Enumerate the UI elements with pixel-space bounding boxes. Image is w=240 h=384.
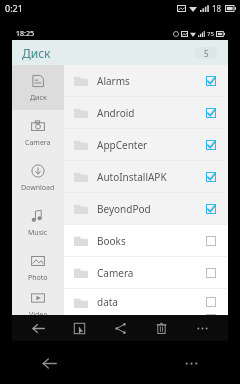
- staticText: Download: [21, 183, 55, 193]
- button[interactable]: BeyondPod: [64, 193, 228, 224]
- button[interactable]: Android: [64, 97, 228, 128]
- button[interactable]: Select Camera: [204, 266, 218, 280]
- staticText: 0:21: [5, 2, 23, 14]
- button[interactable]: Share: [105, 315, 135, 341]
- staticText: Music: [28, 228, 48, 238]
- button[interactable]: More options: [178, 350, 204, 376]
- button[interactable]: Back: [23, 315, 53, 341]
- staticText: 75: [207, 30, 214, 38]
- button[interactable]: More: [187, 315, 217, 341]
- button[interactable]: Back: [36, 350, 62, 376]
- staticText: Android: [97, 106, 204, 120]
- button[interactable]: Music: [12, 200, 64, 245]
- button[interactable]: Select AppCenter: [204, 138, 218, 152]
- staticText: Video: [29, 310, 48, 315]
- staticText: data: [97, 295, 204, 309]
- button[interactable]: Select Alarms: [204, 74, 218, 88]
- button[interactable]: Delete: [146, 315, 176, 341]
- staticText: 18:25: [16, 29, 34, 39]
- staticText: Диск: [30, 93, 47, 103]
- staticText: Camera: [97, 266, 204, 280]
- button[interactable]: Select AutoInstallAPK: [204, 170, 218, 184]
- button[interactable]: Video: [12, 290, 64, 315]
- button[interactable]: Camera: [64, 257, 228, 288]
- button[interactable]: Select all: [64, 315, 94, 341]
- staticText: Books: [97, 234, 204, 248]
- button[interactable]: 5: [194, 47, 218, 59]
- button[interactable]: Select BeyondPod: [204, 202, 218, 216]
- button[interactable]: Select data: [204, 295, 218, 309]
- staticText: 5: [204, 48, 209, 59]
- staticText: Alarms: [97, 74, 204, 88]
- button[interactable]: Photo: [12, 245, 64, 290]
- button[interactable]: AppCenter: [64, 129, 228, 160]
- staticText: AppCenter: [97, 138, 204, 152]
- button[interactable]: Select Android: [204, 106, 218, 120]
- staticText: 18: [212, 3, 222, 14]
- staticText: Диск: [22, 45, 51, 61]
- button[interactable]: Download: [12, 155, 64, 200]
- staticText: AutoInstallAPK: [97, 170, 204, 184]
- button[interactable]: Диск: [12, 65, 64, 110]
- button[interactable]: data: [64, 289, 228, 315]
- staticText: Photo: [28, 273, 48, 283]
- button[interactable]: Alarms: [64, 65, 228, 96]
- staticText: Camera: [25, 138, 51, 148]
- button[interactable]: Camera: [12, 110, 64, 155]
- staticText: BeyondPod: [97, 202, 204, 216]
- button[interactable]: Books: [64, 225, 228, 256]
- button[interactable]: AutoInstallAPK: [64, 161, 228, 192]
- button[interactable]: Select Books: [204, 234, 218, 248]
